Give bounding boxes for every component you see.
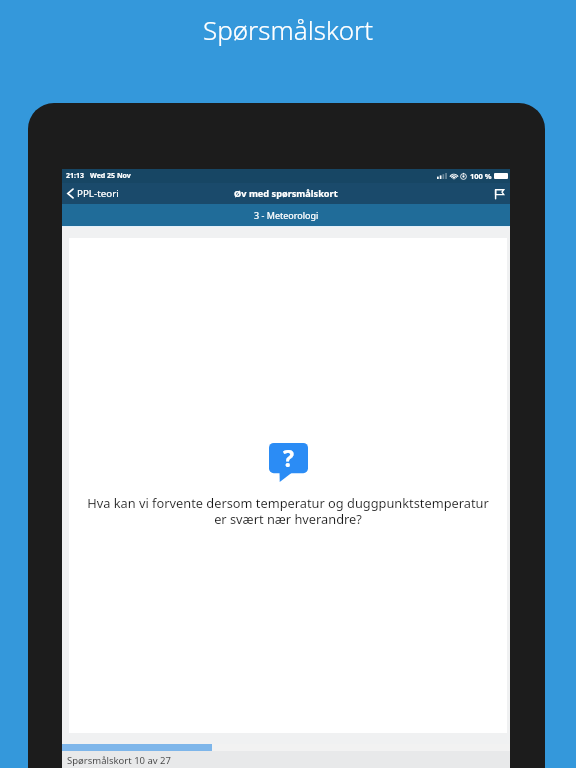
staticText: Wed 25 Nov	[90, 171, 131, 181]
staticText: 100 %	[470, 171, 492, 181]
staticText: PPL-teori	[77, 187, 119, 200]
staticText: 3 - Meteorologi	[254, 209, 319, 221]
button[interactable]: ?	[69, 238, 507, 733]
staticText: Øv med spørsmålskort	[234, 187, 338, 200]
staticText: Spørsmålskort 10 av 27	[67, 754, 171, 767]
staticText: 21:13	[66, 171, 84, 181]
staticText: Spørsmålskort	[203, 12, 374, 47]
staticText: ?	[283, 442, 294, 473]
staticText: Hva kan vi forvente dersom temperatur og…	[85, 494, 491, 528]
button[interactable]: PPL-teori	[62, 183, 125, 204]
button[interactable]: Flag question	[491, 186, 507, 202]
